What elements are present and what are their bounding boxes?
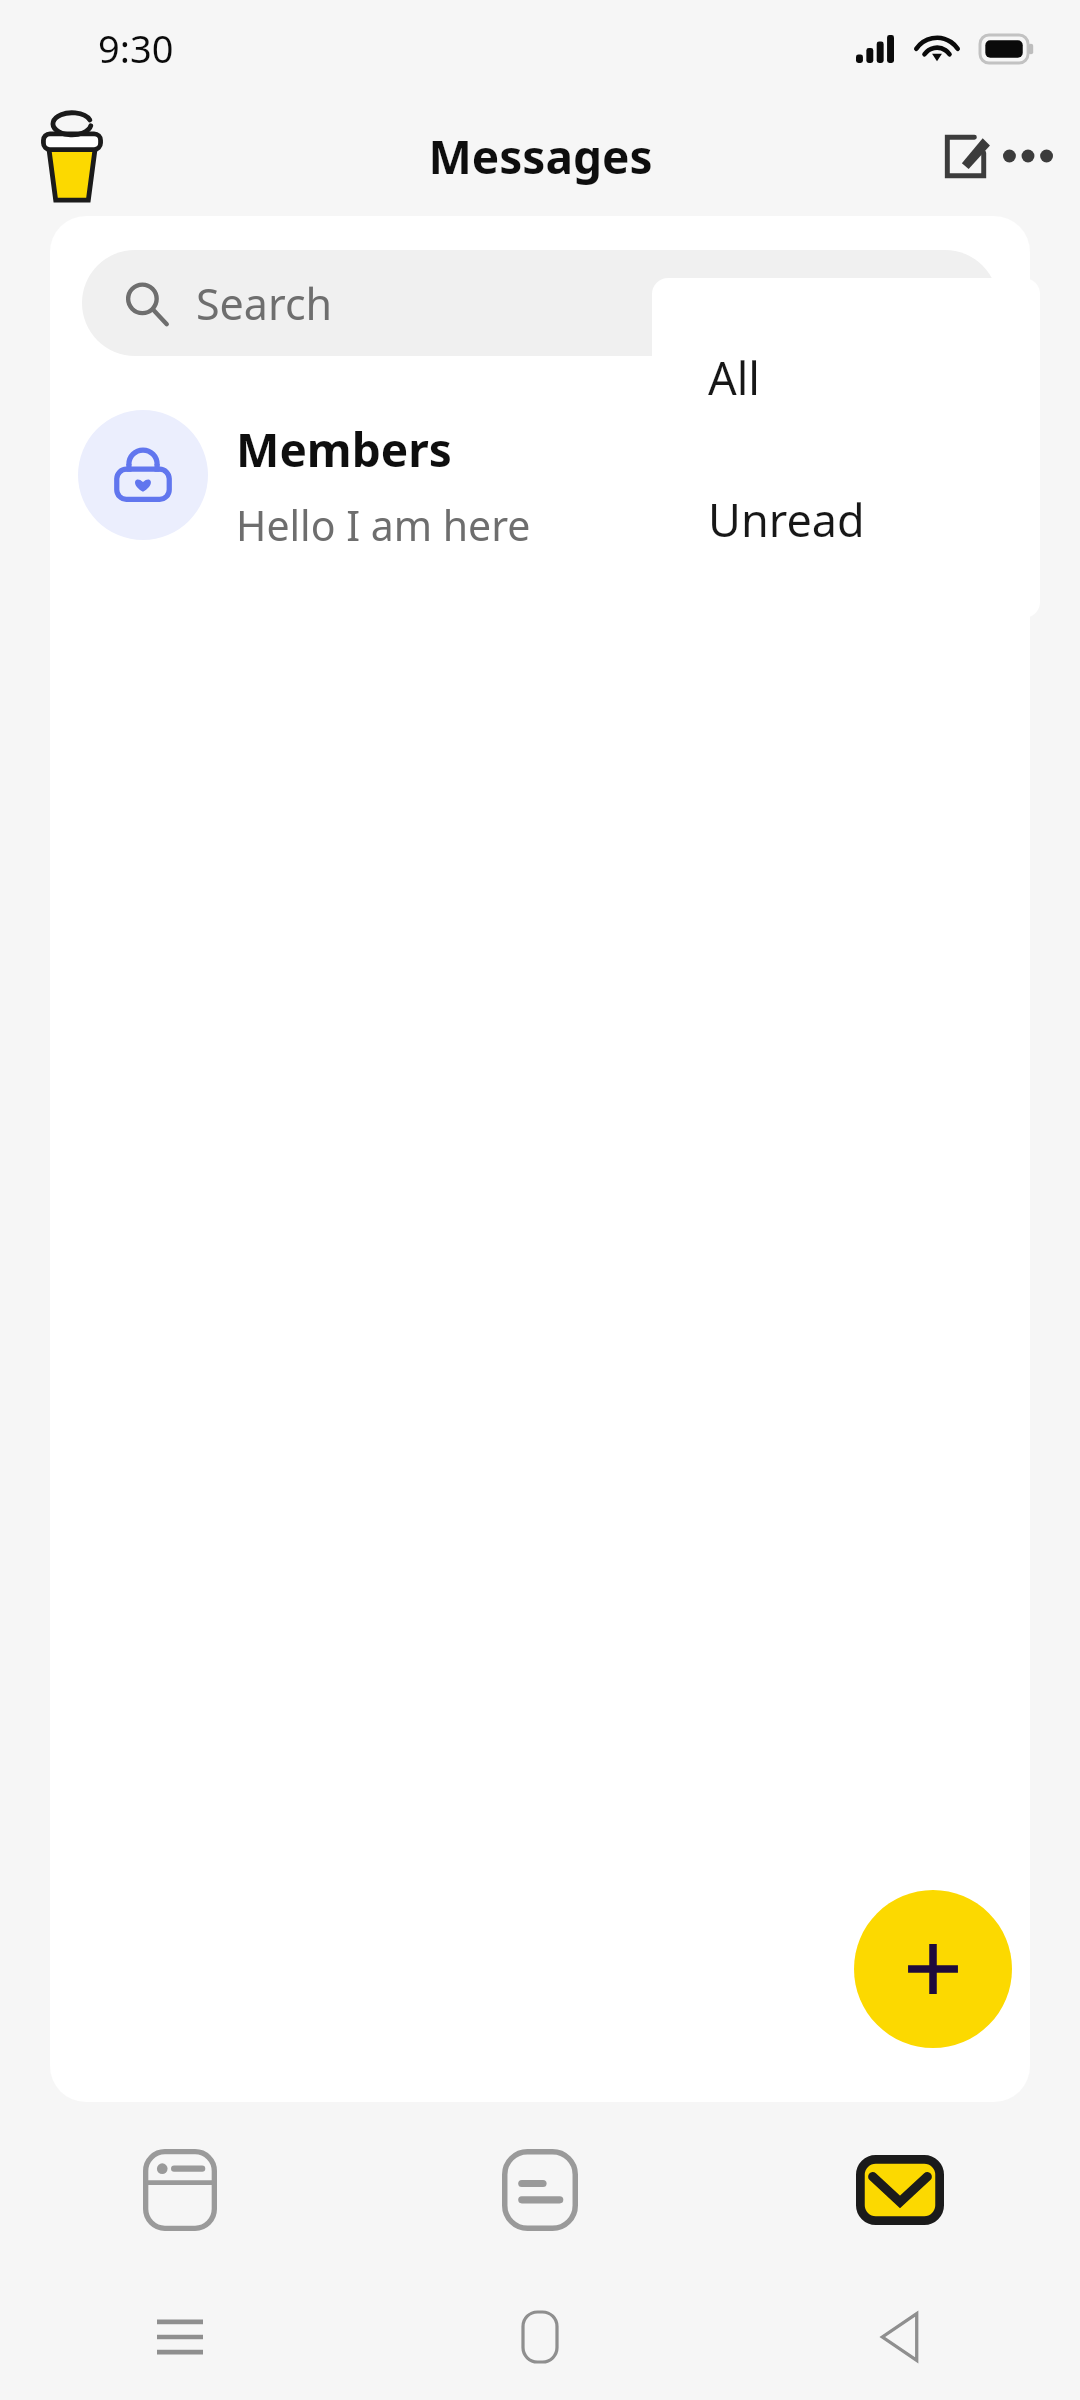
button[interactable]: All	[652, 306, 1040, 448]
button[interactable]: Search	[82, 250, 998, 356]
button[interactable]: Home	[360, 2274, 720, 2400]
button[interactable]: More options	[998, 126, 1058, 186]
button[interactable]: Messages	[720, 2106, 1080, 2274]
button[interactable]: Recent apps	[0, 2274, 360, 2400]
staticText: Members	[236, 418, 452, 481]
button[interactable]: Notes	[360, 2106, 720, 2274]
staticText: Unread	[708, 489, 865, 550]
button[interactable]: New message	[854, 1890, 1012, 2048]
button[interactable]: Profile	[26, 110, 118, 202]
staticText: 9:30	[98, 22, 174, 74]
button[interactable]: Unread	[652, 448, 1040, 590]
staticText: Hello I am here	[236, 497, 531, 553]
button[interactable]: Back	[720, 2274, 1080, 2400]
button[interactable]: Cards	[0, 2106, 360, 2274]
staticText: Messages	[428, 125, 653, 188]
staticText: All	[708, 347, 760, 408]
staticText: Search	[196, 274, 333, 333]
button[interactable]: Members	[50, 396, 1030, 567]
button[interactable]: Compose message	[932, 123, 998, 189]
